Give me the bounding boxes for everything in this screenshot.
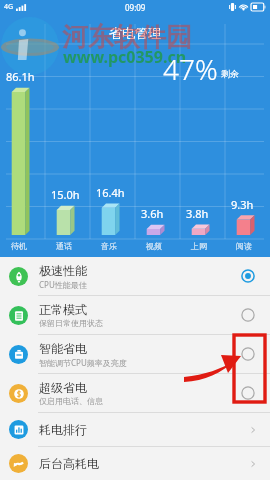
staticText: 47%: [163, 50, 218, 88]
button[interactable]: Select mode: [238, 305, 258, 325]
staticText: 仅启用电话、信息: [39, 396, 103, 406]
staticText: 待机: [11, 241, 27, 251]
staticText: 3.6h: [141, 206, 164, 221]
button[interactable]: 耗电排行: [0, 413, 270, 446]
staticText: 音乐: [101, 241, 117, 251]
staticText: 9.3h: [231, 197, 254, 212]
button[interactable]: 后台高耗电: [0, 447, 270, 480]
staticText: 智能调节CPU频率及亮度: [39, 357, 127, 368]
button[interactable]: Select mode: [238, 383, 258, 403]
staticText: 保留日常使用状态: [39, 318, 103, 328]
staticText: CPU性能最佳: [39, 279, 87, 290]
button[interactable]: 正常模式: [0, 296, 270, 334]
staticText: 09:09: [125, 2, 146, 13]
staticText: 4G: [4, 2, 14, 12]
button[interactable]: 智能省电: [0, 335, 270, 373]
staticText: 剩余: [221, 68, 239, 79]
staticText: 省电管理: [0, 25, 270, 41]
staticText: 阅读: [236, 241, 252, 251]
staticText: 通话: [56, 241, 72, 251]
staticText: 后台高耗电: [39, 456, 248, 471]
other: 后台高耗电: [248, 459, 258, 469]
staticText: 3.8h: [186, 206, 209, 221]
staticText: 超级省电: [39, 380, 87, 395]
staticText: www.pc0359.cn: [63, 46, 187, 68]
staticText: 极速性能: [39, 263, 87, 278]
staticText: 86.1h: [6, 69, 35, 84]
staticText: 耗电排行: [39, 422, 248, 437]
staticText: 正常模式: [39, 302, 87, 317]
button[interactable]: Selected mode: [238, 266, 258, 286]
staticText: 河东软件园: [62, 21, 192, 54]
staticText: 视频: [146, 241, 162, 251]
staticText: 智能省电: [39, 341, 87, 356]
button[interactable]: 极速性能: [0, 257, 270, 295]
button[interactable]: Select mode: [238, 344, 258, 364]
button[interactable]: 超级省电: [0, 374, 270, 412]
staticText: 15.0h: [51, 187, 80, 202]
staticText: 上网: [191, 241, 207, 251]
staticText: 16.4h: [96, 185, 125, 200]
other: 耗电排行: [248, 425, 258, 435]
